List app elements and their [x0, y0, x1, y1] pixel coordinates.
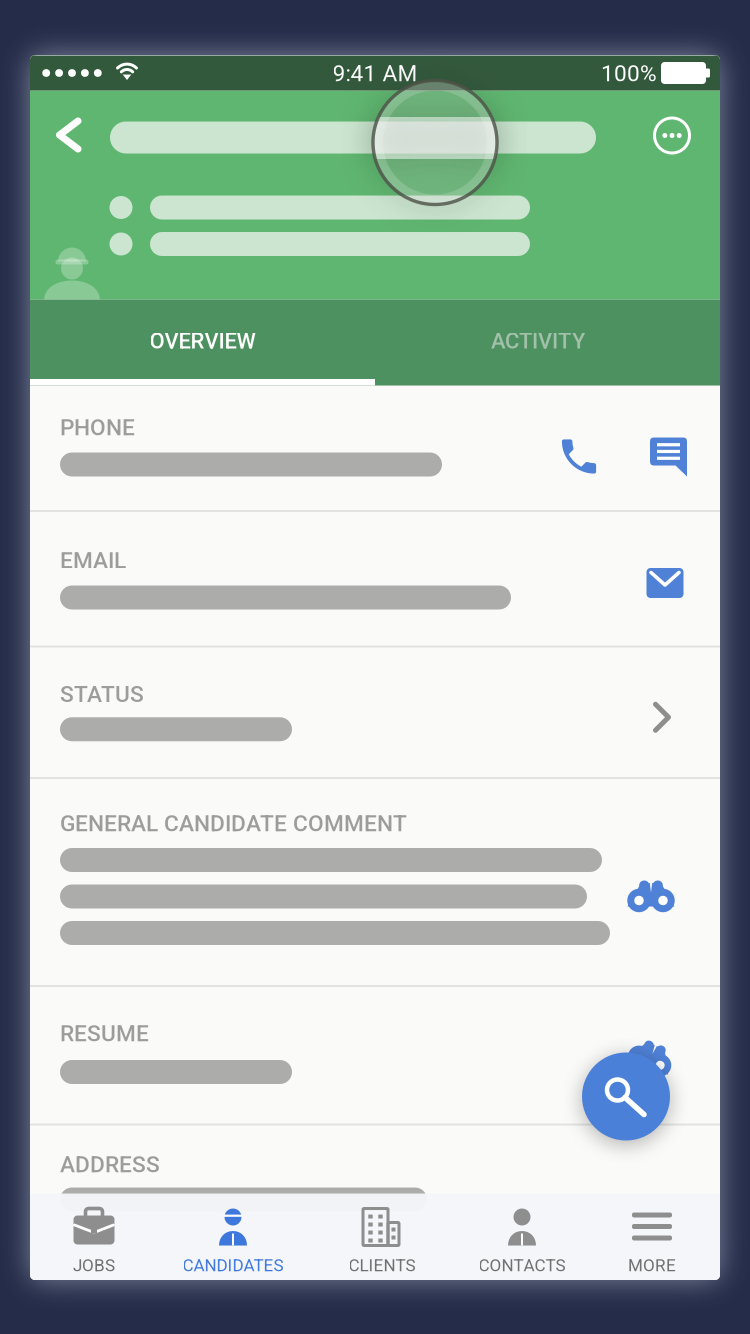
button[interactable]: Message — [647, 434, 691, 478]
staticText: 9:41 AM — [332, 60, 417, 87]
button[interactable]: Search — [582, 1052, 670, 1140]
button[interactable]: Back — [53, 114, 85, 155]
button[interactable]: More options — [650, 113, 694, 157]
staticText: ADDRESS — [60, 1151, 160, 1178]
staticText: CONTACTS — [478, 1255, 565, 1275]
button[interactable]: View — [628, 877, 674, 915]
button[interactable]: ACTIVITY — [365, 298, 710, 384]
staticText: EMAIL — [60, 547, 126, 574]
staticText: 100% — [601, 60, 657, 87]
staticText: CANDIDATES — [182, 1255, 283, 1275]
button[interactable]: Call — [557, 434, 601, 478]
staticText: RESUME — [60, 1020, 149, 1047]
button[interactable]: CLIENTS — [315, 1195, 449, 1279]
staticText: CLIENTS — [348, 1255, 415, 1275]
staticText: PHONE — [60, 414, 135, 441]
button[interactable]: OVERVIEW — [30, 298, 375, 384]
staticText: OVERVIEW — [149, 328, 255, 354]
button[interactable]: CONTACTS — [455, 1195, 589, 1279]
button[interactable]: CANDIDATES — [166, 1195, 300, 1279]
button[interactable]: Email — [643, 561, 687, 605]
staticText: STATUS — [60, 681, 144, 708]
staticText: JOBS — [73, 1255, 115, 1275]
button[interactable]: MORE — [585, 1195, 719, 1279]
staticText: ACTIVITY — [491, 328, 585, 354]
button[interactable]: JOBS — [27, 1195, 161, 1279]
button[interactable]: STATUS — [30, 647, 720, 778]
staticText: GENERAL CANDIDATE COMMENT — [60, 810, 407, 837]
staticText: MORE — [628, 1255, 676, 1275]
